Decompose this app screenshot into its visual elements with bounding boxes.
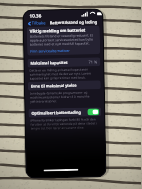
staticText: Maksimal kapasitet (30, 60, 68, 66)
staticText: iPhone forsinker ladingen forbi 80 % når… (30, 117, 100, 131)
staticText: Dette er en måling av batterikapasiteten… (29, 67, 99, 81)
staticText: Evne til maksimal ytelse (31, 83, 77, 89)
staticText: Batteriets tilstand er vesentlig reduser… (30, 33, 97, 47)
staticText: Optimalisert batterilading (31, 110, 81, 116)
staticText: Innebygde dynamiske programvare- og mask… (30, 90, 99, 104)
button[interactable]: Maksimal kapasitet (27, 57, 100, 68)
staticText: 10.36 (29, 12, 41, 19)
button[interactable]: Optimalisert batterilading (28, 107, 101, 118)
button[interactable]: Evne til maksimal ytelse (28, 80, 101, 91)
staticText: Batteritilstand og lading (50, 19, 98, 25)
button[interactable]: Finn servicealternativer (30, 48, 70, 54)
staticText: Tilbake (32, 20, 47, 27)
staticText: 71 % (88, 59, 97, 65)
staticText: Viktig melding om batteriet (30, 28, 86, 34)
button[interactable]: Back (28, 20, 47, 27)
other: Back (28, 22, 31, 26)
